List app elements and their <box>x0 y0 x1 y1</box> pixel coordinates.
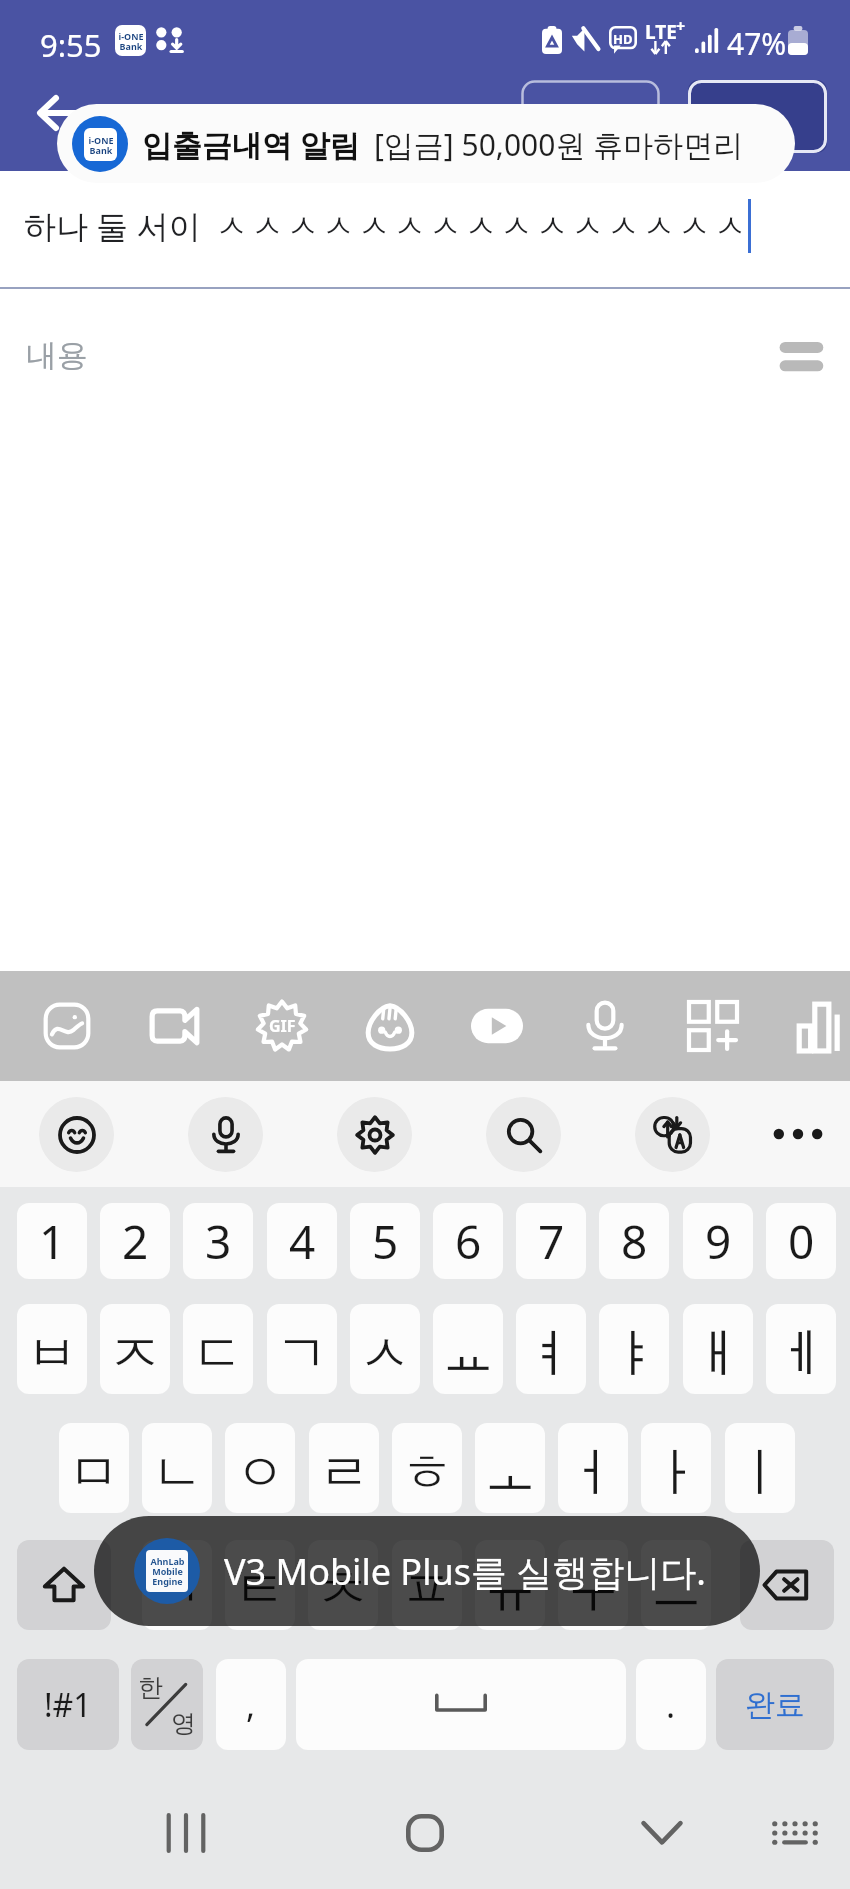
staticText: 완료 <box>745 1686 805 1724</box>
button[interactable]: ㅏ <box>641 1423 711 1513</box>
button[interactable]: ㄹ <box>309 1423 379 1513</box>
staticText: ㅜ <box>567 1557 619 1623</box>
staticText: ㅐ <box>692 1321 744 1387</box>
button[interactable]: ㅂ <box>17 1304 87 1394</box>
staticText: , <box>246 1682 256 1728</box>
button[interactable]: 0 <box>766 1203 836 1279</box>
staticText: ㄷ <box>192 1321 244 1387</box>
button[interactable]: 8 <box>599 1203 669 1279</box>
button[interactable]: Options <box>774 336 830 378</box>
button[interactable]: 6 <box>433 1203 503 1279</box>
button[interactable]: Emoji <box>39 1097 114 1172</box>
button[interactable]: 7 <box>516 1203 586 1279</box>
button[interactable]: 9 <box>683 1203 753 1279</box>
button[interactable]: 5 <box>350 1203 420 1279</box>
button[interactable]: Korean English toggle <box>131 1659 203 1750</box>
staticText: ㅅ <box>359 1321 411 1387</box>
staticText: 5 <box>372 1210 399 1273</box>
button[interactable]: ㄷ <box>183 1304 253 1394</box>
button[interactable]: !#1 <box>17 1659 119 1750</box>
staticText: ㅎ <box>401 1440 453 1506</box>
staticText: ㅕ <box>525 1321 577 1387</box>
button[interactable]: ㅗ <box>475 1423 545 1513</box>
button[interactable]: GIF <box>249 993 315 1059</box>
staticText: ㅏ <box>650 1440 702 1506</box>
staticText: 하나 둘 서이 <box>24 204 201 248</box>
button[interactable]: ㅔ <box>766 1304 836 1394</box>
button[interactable]: . <box>636 1659 706 1750</box>
button[interactable]: Emoji <box>357 993 423 1059</box>
staticText: 2 <box>122 1210 149 1273</box>
button[interactable]: ㅊ <box>308 1540 378 1630</box>
button[interactable]: Voice input <box>572 993 638 1059</box>
staticText: ㅋ <box>151 1557 203 1623</box>
button[interactable]: ㅕ <box>516 1304 586 1394</box>
staticText: ㅂ <box>26 1321 78 1387</box>
button[interactable]: ㅜ <box>558 1540 628 1630</box>
staticText: LTE <box>645 19 677 45</box>
button[interactable]: ㅅ <box>350 1304 420 1394</box>
button[interactable]: ㄱ <box>267 1304 337 1394</box>
staticText: ㅇ <box>234 1440 286 1506</box>
staticText: ㄴ <box>151 1440 203 1506</box>
staticText: HD <box>613 30 633 48</box>
button[interactable]: ㅡ <box>641 1540 711 1630</box>
staticText: + <box>676 15 686 37</box>
button[interactable]: Backspace <box>740 1540 834 1630</box>
button[interactable]: 완료 <box>716 1659 834 1750</box>
button[interactable]: 4 <box>267 1203 337 1279</box>
staticText: 한 <box>138 1672 163 1703</box>
button[interactable]: ㅇ <box>225 1423 295 1513</box>
button[interactable]: ㅈ <box>100 1304 170 1394</box>
button[interactable]: Hide keyboard <box>622 1793 702 1873</box>
button[interactable]: ㅍ <box>392 1540 462 1630</box>
button[interactable]: Image <box>34 993 100 1059</box>
staticText: V3 Mobile Plus를 실행합니다. <box>224 1547 706 1596</box>
button[interactable]: Option <box>521 80 660 153</box>
staticText: ㅡ <box>650 1557 702 1623</box>
button[interactable]: ㅋ <box>142 1540 212 1630</box>
button[interactable]: ㅁ <box>59 1423 129 1513</box>
staticText: ㄹ <box>318 1440 370 1506</box>
button[interactable]: Video <box>142 993 208 1059</box>
button[interactable]: ㅠ <box>475 1540 545 1630</box>
button[interactable]: ㅎ <box>392 1423 462 1513</box>
button[interactable]: 2 <box>100 1203 170 1279</box>
staticText: ㄱ <box>276 1321 328 1387</box>
staticText: 0 <box>788 1210 815 1273</box>
button[interactable]: Save <box>688 80 827 153</box>
button[interactable]: , <box>216 1659 286 1750</box>
button[interactable]: More options <box>763 1099 833 1169</box>
button[interactable]: Recents <box>146 1793 226 1873</box>
staticText: ㅑ <box>608 1321 660 1387</box>
button[interactable]: ㅐ <box>683 1304 753 1394</box>
button[interactable]: ㅓ <box>558 1423 628 1513</box>
button[interactable]: Back <box>36 88 86 138</box>
button[interactable]: Change keyboard <box>755 1793 835 1873</box>
button[interactable]: ㅣ <box>725 1423 795 1513</box>
button[interactable]: Search <box>486 1097 561 1172</box>
button[interactable]: Home <box>385 1793 465 1873</box>
button[interactable]: Space <box>296 1659 626 1750</box>
staticText: ㅊ <box>317 1557 369 1623</box>
button[interactable]: i-ONE Bank <box>57 104 795 183</box>
button[interactable]: Statistics <box>787 993 850 1059</box>
staticText: ㅌ <box>234 1557 286 1623</box>
button[interactable]: Apps <box>680 993 746 1059</box>
button[interactable]: ㅌ <box>225 1540 295 1630</box>
button[interactable]: Shift <box>17 1540 111 1630</box>
staticText: 9 <box>705 1210 732 1273</box>
staticText: 4 <box>289 1210 316 1273</box>
button[interactable]: YouTube <box>464 993 530 1059</box>
button[interactable]: 1 <box>17 1203 87 1279</box>
button[interactable]: ㅑ <box>599 1304 669 1394</box>
button[interactable]: ㄴ <box>142 1423 212 1513</box>
button[interactable]: Settings <box>337 1097 412 1172</box>
button[interactable]: Voice typing <box>188 1097 263 1172</box>
staticText: ㅗ <box>484 1440 536 1506</box>
staticText: GIF <box>269 1015 296 1037</box>
button[interactable]: Translate <box>635 1097 710 1172</box>
staticText: 47% <box>727 23 787 64</box>
button[interactable]: ㅛ <box>433 1304 503 1394</box>
button[interactable]: 3 <box>183 1203 253 1279</box>
